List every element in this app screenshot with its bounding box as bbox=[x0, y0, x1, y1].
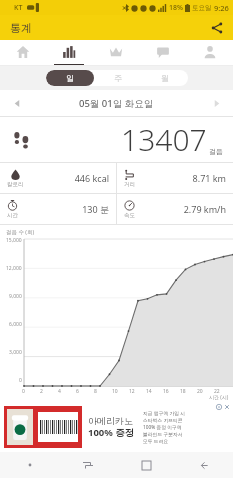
staticText: KT bbox=[14, 3, 23, 13]
staticText: 10 bbox=[112, 388, 118, 395]
button[interactable]: 속도 bbox=[117, 194, 233, 224]
staticText: 100% 증정 bbox=[88, 426, 135, 439]
staticText: 지금 앱구에 가입 시 bbox=[143, 410, 186, 417]
staticText: 12 bbox=[129, 388, 135, 395]
staticText: 0 bbox=[22, 388, 25, 395]
staticText: 9:26 bbox=[214, 3, 229, 13]
staticText: 시간 bbox=[7, 212, 18, 219]
staticText: 0 bbox=[19, 377, 22, 384]
button[interactable]: Recents bbox=[59, 452, 117, 478]
staticText: 18 bbox=[180, 388, 186, 395]
staticText: 05월 01일 화요일 bbox=[79, 97, 154, 110]
button[interactable]: 아메리카노 bbox=[0, 402, 233, 452]
button[interactable]: Ranking bbox=[92, 40, 139, 66]
staticText: 월 bbox=[161, 73, 169, 83]
staticText: 8 bbox=[94, 388, 97, 395]
staticText: 3,000 bbox=[9, 349, 22, 356]
staticText: 주 bbox=[114, 73, 122, 83]
button[interactable]: 칼로리 bbox=[0, 163, 116, 193]
staticText: 토요일 bbox=[192, 4, 212, 12]
staticText: 20 bbox=[197, 388, 203, 395]
button[interactable]: Home bbox=[0, 40, 46, 66]
staticText: 속도 bbox=[124, 212, 135, 219]
button[interactable]: Home bbox=[117, 452, 175, 478]
staticText: 15,000 bbox=[6, 237, 22, 244]
staticText: 6,000 bbox=[9, 321, 22, 328]
staticText: 18% bbox=[169, 3, 183, 13]
staticText: 16 bbox=[163, 388, 169, 395]
button[interactable]: Previous day bbox=[8, 94, 26, 112]
button[interactable]: Back bbox=[175, 452, 233, 478]
staticText: 12,000 bbox=[6, 265, 22, 272]
staticText: 14 bbox=[146, 388, 152, 395]
staticText: 4 bbox=[58, 388, 61, 395]
staticText: 아메리카노 bbox=[88, 415, 133, 426]
staticText: 22 bbox=[214, 388, 220, 395]
staticText: 8.71 km bbox=[135, 172, 226, 184]
button[interactable]: 일 bbox=[46, 70, 94, 86]
staticText: 2 bbox=[40, 388, 43, 395]
button[interactable]: Share bbox=[207, 18, 227, 38]
staticText: 걸음 bbox=[209, 147, 223, 156]
staticText: 거리 bbox=[124, 181, 135, 188]
staticText: 446 kcal bbox=[24, 172, 109, 184]
staticText: 2.79 km/h bbox=[135, 203, 226, 215]
staticText: 130 분 bbox=[18, 203, 109, 215]
staticText: 시간 (시) bbox=[209, 394, 229, 401]
button[interactable]: 거리 bbox=[117, 163, 233, 193]
staticText: 9,000 bbox=[9, 293, 22, 300]
staticText: 스타벅스 기프티콘 bbox=[143, 417, 183, 424]
staticText: 블라인드 구분자서 bbox=[143, 431, 183, 438]
button[interactable]: Next day bbox=[207, 94, 225, 112]
staticText: 통계 bbox=[10, 21, 32, 35]
button[interactable]: Statistics bbox=[46, 40, 92, 66]
button[interactable]: 시간 bbox=[0, 194, 116, 224]
button[interactable]: 주 bbox=[94, 70, 141, 86]
button[interactable]: Profile bbox=[186, 40, 233, 66]
staticText: 6 bbox=[76, 388, 79, 395]
button[interactable]: 월 bbox=[141, 70, 188, 86]
button[interactable]: Assistant bbox=[0, 452, 59, 478]
staticText: 100% 증정 이구에 bbox=[143, 424, 182, 431]
staticText: 걸음 수 (회) bbox=[6, 228, 35, 236]
staticText: 13407 bbox=[121, 119, 207, 160]
button[interactable]: Messages bbox=[139, 40, 186, 66]
staticText: 칼로리 bbox=[7, 181, 24, 188]
staticText: 모두 드려요 bbox=[143, 438, 169, 445]
staticText: 일 bbox=[66, 73, 74, 83]
